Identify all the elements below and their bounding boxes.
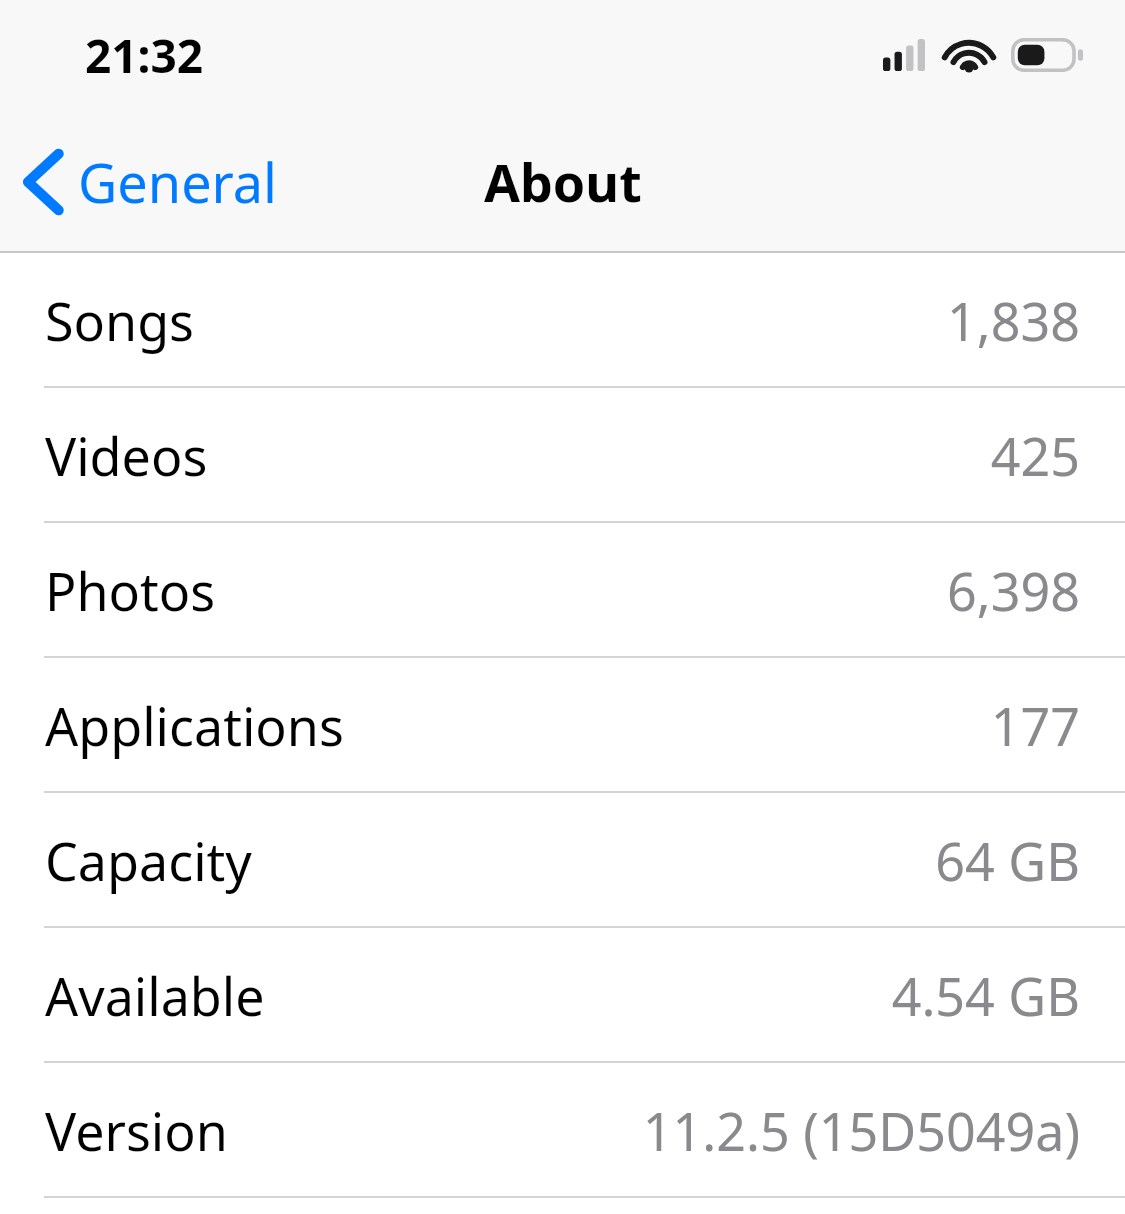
staticText: Videos <box>45 420 208 491</box>
staticText: About <box>484 146 642 217</box>
staticText: 4.54 GB <box>891 960 1080 1031</box>
staticText: 1,838 <box>947 285 1080 356</box>
button[interactable]: Photos <box>0 523 1125 658</box>
staticText: Applications <box>45 690 344 761</box>
button[interactable]: Songs <box>0 253 1125 388</box>
button[interactable]: Available <box>0 928 1125 1063</box>
staticText: 64 GB <box>935 825 1080 896</box>
staticText: Capacity <box>45 825 252 896</box>
button[interactable]: Videos <box>0 388 1125 523</box>
staticText: Photos <box>45 555 216 626</box>
staticText: 21:32 <box>85 24 204 87</box>
staticText: 177 <box>990 690 1080 761</box>
staticText: Songs <box>45 285 195 356</box>
button[interactable]: General <box>26 145 278 219</box>
staticText: General <box>78 145 278 219</box>
button[interactable]: Applications <box>0 658 1125 793</box>
button[interactable]: Capacity <box>0 793 1125 928</box>
staticText: 11.2.5 (15D5049a) <box>642 1095 1080 1166</box>
staticText: Available <box>45 960 265 1031</box>
button[interactable]: Version <box>0 1063 1125 1198</box>
staticText: 6,398 <box>947 555 1080 626</box>
staticText: Version <box>45 1095 228 1166</box>
staticText: 425 <box>990 420 1080 491</box>
